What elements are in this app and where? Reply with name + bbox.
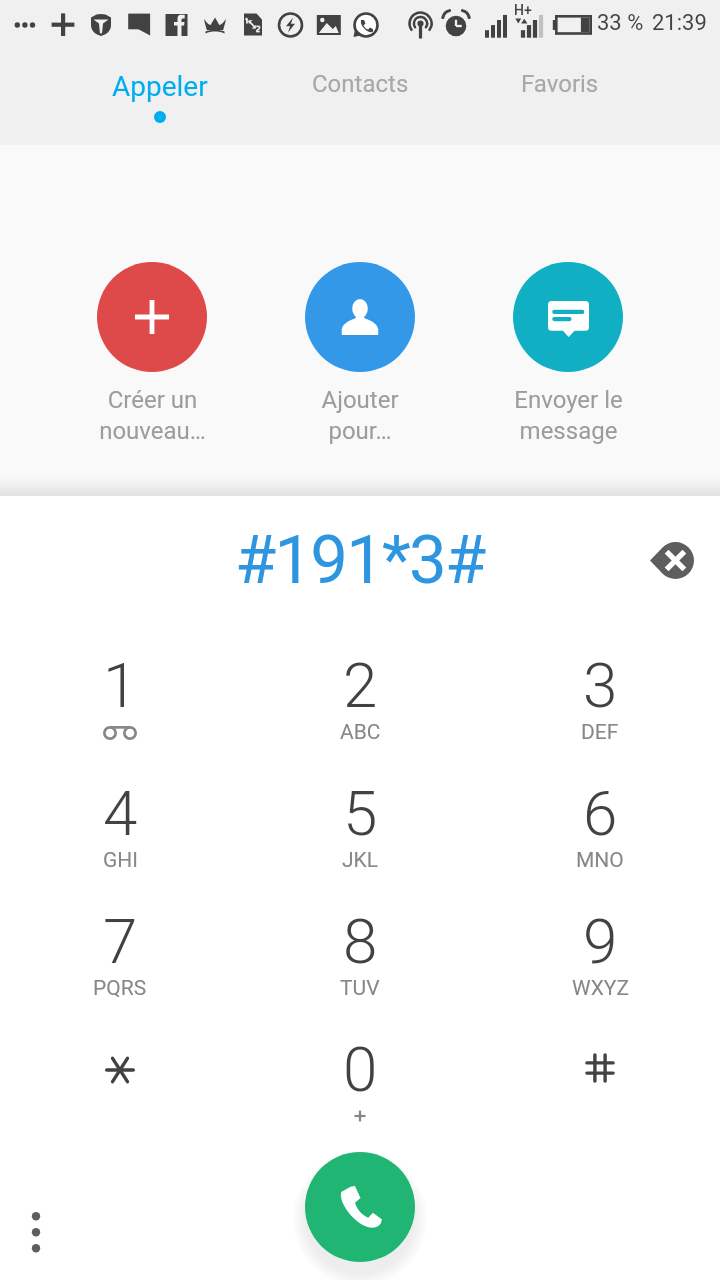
staticText: WXYZ <box>572 976 629 1001</box>
staticText: 5 <box>343 777 378 850</box>
staticText: 1 <box>103 649 138 722</box>
button[interactable]: Contacts <box>260 0 460 145</box>
staticText: ABC <box>340 720 381 745</box>
staticText: 2 <box>343 649 378 722</box>
button[interactable]: Créer un nouveau… <box>48 262 256 445</box>
staticText: Créer un nouveau… <box>99 386 206 445</box>
staticText: 33 % <box>597 10 644 36</box>
staticText: 6 <box>583 777 618 850</box>
button[interactable]: Ajouter pour… <box>256 262 464 445</box>
staticText: 21:39 <box>652 10 707 36</box>
staticText: Envoyer le message <box>514 386 623 445</box>
button[interactable]: Envoyer le message <box>464 262 672 445</box>
button[interactable]: 4 <box>0 773 240 901</box>
staticText: 3 <box>583 649 618 722</box>
staticText: PQRS <box>93 976 147 1001</box>
button[interactable]: 3 <box>480 645 720 773</box>
button[interactable]: Favoris <box>460 0 660 145</box>
staticText: MNO <box>576 848 624 873</box>
staticText: Favoris <box>521 70 599 98</box>
staticText: Appeler <box>112 70 208 103</box>
staticText: 8 <box>343 905 378 978</box>
staticText: 7 <box>103 905 138 978</box>
button[interactable]: Call <box>305 1152 415 1262</box>
button[interactable]: 1 <box>0 645 240 773</box>
button[interactable] <box>0 1029 240 1157</box>
button[interactable]: 9 <box>480 901 720 1029</box>
button[interactable]: 0 <box>240 1029 480 1157</box>
staticText: Ajouter pour… <box>321 386 399 445</box>
staticText: DEF <box>581 720 619 745</box>
staticText: 9 <box>583 905 618 978</box>
button[interactable] <box>480 1029 720 1157</box>
staticText: #191*3# <box>235 521 485 600</box>
staticText: Contacts <box>312 70 409 98</box>
button[interactable]: 8 <box>240 901 480 1029</box>
button[interactable]: Backspace <box>632 520 712 600</box>
staticText: H+ <box>514 2 532 18</box>
button[interactable]: Appeler <box>60 0 260 145</box>
staticText: TUV <box>340 976 380 1001</box>
staticText: JKL <box>342 848 379 873</box>
button[interactable]: 7 <box>0 901 240 1029</box>
button[interactable]: More options <box>8 1204 64 1260</box>
staticText: 0 <box>343 1033 378 1106</box>
button[interactable]: 5 <box>240 773 480 901</box>
staticText: 4 <box>103 777 138 850</box>
button[interactable]: 2 <box>240 645 480 773</box>
button[interactable]: 6 <box>480 773 720 901</box>
staticText: GHI <box>103 848 138 873</box>
